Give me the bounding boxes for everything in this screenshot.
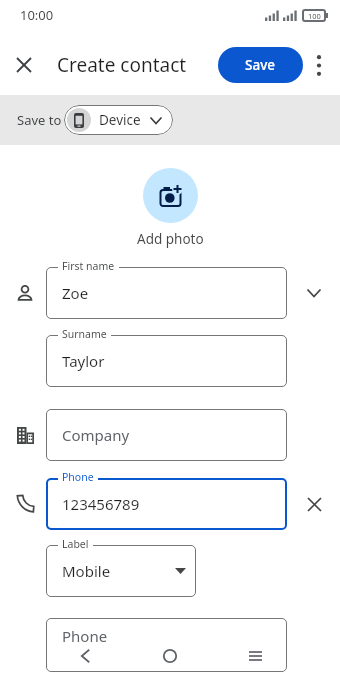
button[interactable]: Zoe xyxy=(46,267,287,319)
staticText: Save to xyxy=(17,111,62,129)
button[interactable]: Save xyxy=(218,47,303,83)
staticText: Mobile xyxy=(62,561,111,581)
staticText: 123456789 xyxy=(62,494,140,514)
button[interactable] xyxy=(17,53,41,77)
staticText: Device xyxy=(99,111,141,129)
staticText: Phone xyxy=(62,470,94,484)
button[interactable] xyxy=(65,636,105,676)
button[interactable] xyxy=(150,636,190,676)
staticText: Company xyxy=(62,425,130,445)
staticText: Taylor xyxy=(62,351,105,371)
staticText: Zoe xyxy=(62,283,89,303)
staticText: Surname xyxy=(62,327,107,341)
button[interactable]: Device xyxy=(64,105,173,135)
staticText: Label xyxy=(62,537,89,551)
button[interactable]: Mobile xyxy=(46,545,196,597)
staticText: 100 xyxy=(308,11,321,21)
button[interactable]: Add photo xyxy=(137,230,204,248)
staticText: Phone xyxy=(62,626,108,646)
staticText: Create contact xyxy=(57,52,187,78)
button[interactable] xyxy=(307,53,331,77)
button[interactable]: 123456789 xyxy=(46,478,287,530)
button[interactable] xyxy=(235,636,275,676)
button[interactable]: Phone xyxy=(46,618,287,672)
button[interactable] xyxy=(143,168,198,223)
button[interactable] xyxy=(294,273,334,313)
staticText: Save xyxy=(245,56,276,74)
button[interactable]: Taylor xyxy=(46,335,287,387)
button[interactable] xyxy=(294,484,334,524)
button[interactable]: Company xyxy=(46,409,287,461)
staticText: 10:00 xyxy=(20,6,54,24)
staticText: First name xyxy=(62,259,115,273)
